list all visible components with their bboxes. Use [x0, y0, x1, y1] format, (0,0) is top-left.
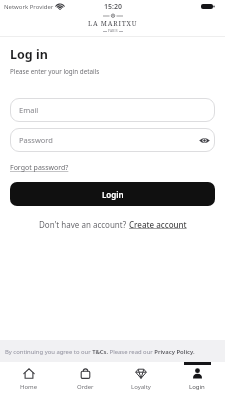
- staticText: Network Provider: [4, 3, 54, 11]
- staticText: Log in: [10, 46, 48, 63]
- staticText: Password: [19, 135, 53, 145]
- button[interactable]: Login: [10, 182, 215, 206]
- staticText: Please enter your login details: [10, 67, 100, 76]
- button[interactable]: Password: [10, 128, 215, 152]
- button[interactable]: Order: [57, 362, 113, 400]
- staticText: 15:20: [104, 2, 122, 12]
- button[interactable]: Create account: [129, 219, 187, 230]
- staticText: Loyalty: [131, 383, 151, 391]
- button[interactable]: Email: [10, 98, 215, 122]
- staticText: LA MARITXU: [88, 19, 138, 28]
- button[interactable]: Loyalty: [113, 362, 169, 400]
- staticText: Home: [20, 383, 38, 391]
- staticText: Login: [102, 189, 124, 200]
- button[interactable]: Forgot password?: [10, 163, 69, 173]
- staticText: Login: [189, 383, 205, 391]
- staticText: By continuing you agree to our T&Cs. Ple…: [5, 348, 195, 356]
- staticText: Order: [77, 383, 94, 391]
- button[interactable]: Home: [0, 362, 57, 400]
- staticText: Email: [19, 105, 39, 115]
- button[interactable]: Login: [169, 362, 225, 400]
- staticText: PARIS: [108, 29, 118, 33]
- staticText: Don't have an account?: [39, 219, 129, 230]
